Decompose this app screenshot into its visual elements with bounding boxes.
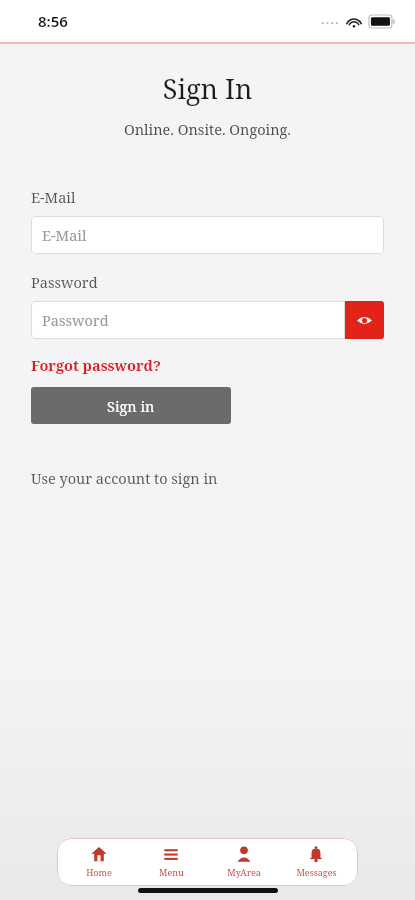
staticText: Sign in <box>107 396 155 416</box>
staticText: Forgot password? <box>31 355 161 375</box>
staticText: Menu <box>159 866 184 878</box>
staticText: Messages <box>296 866 337 878</box>
button[interactable]: Messages <box>285 838 347 886</box>
staticText: E-Mail <box>42 225 87 245</box>
button[interactable]: MyArea <box>213 838 275 886</box>
staticText: E-Mail <box>31 187 76 207</box>
button[interactable]: Home <box>68 838 130 886</box>
staticText: Home <box>86 866 112 878</box>
staticText: MyArea <box>227 866 261 878</box>
button[interactable]: Sign in <box>31 387 231 424</box>
button[interactable]: Show password <box>345 301 384 339</box>
staticText: 8:56 <box>38 11 68 31</box>
button[interactable]: E-Mail <box>31 216 384 254</box>
staticText: Password <box>42 310 109 330</box>
button[interactable]: Password <box>31 301 345 339</box>
staticText: Password <box>31 272 98 292</box>
staticText: Online. Onsite. Ongoing. <box>0 119 415 139</box>
button[interactable]: Menu <box>140 838 202 886</box>
button[interactable]: Forgot password? <box>31 355 161 375</box>
staticText: Use your account to sign in <box>31 468 218 488</box>
staticText: Sign In <box>0 70 415 107</box>
